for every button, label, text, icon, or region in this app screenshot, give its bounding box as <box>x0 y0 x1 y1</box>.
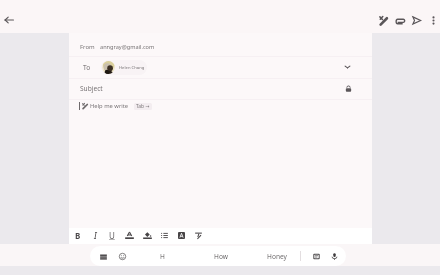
button[interactable]: Text colour <box>121 227 137 243</box>
button[interactable]: More options <box>425 12 440 28</box>
button[interactable]: H <box>142 248 182 264</box>
button[interactable]: Confidential mode <box>340 80 356 96</box>
button[interactable]: Highlight colour <box>139 227 155 243</box>
staticText: Tab → <box>136 103 150 110</box>
button[interactable]: Bold <box>70 227 86 243</box>
staticText: Honey <box>267 252 287 261</box>
button[interactable]: Send <box>408 12 424 28</box>
button[interactable]: Underline <box>104 227 120 243</box>
staticText: Help me write <box>90 102 129 110</box>
staticText: To <box>83 63 91 72</box>
button[interactable]: Attach file <box>392 12 408 28</box>
staticText: anngray@gmail.com <box>100 43 155 51</box>
button[interactable]: Subject <box>69 78 372 99</box>
button[interactable]: Clipboard <box>308 248 324 264</box>
button[interactable]: Emoji <box>114 248 130 264</box>
button[interactable]: Back <box>0 8 18 32</box>
button[interactable]: How <box>201 248 241 264</box>
staticText: From <box>80 43 95 51</box>
button[interactable]: Bulleted list <box>156 227 172 243</box>
button[interactable]: From <box>69 33 372 56</box>
button[interactable]: Paragraph style <box>173 227 189 243</box>
button[interactable]: Voice input <box>326 248 342 264</box>
button[interactable]: Expand recipients <box>339 59 355 75</box>
button[interactable]: Keyboard settings <box>95 248 111 264</box>
button[interactable]: Honey <box>257 248 297 264</box>
staticText: Helen Chang <box>119 65 145 71</box>
button[interactable]: Clear formatting <box>190 227 206 243</box>
staticText: U <box>109 230 115 241</box>
button[interactable]: Italic <box>87 227 103 243</box>
staticText: B <box>75 230 81 241</box>
staticText: Subject <box>80 84 103 93</box>
staticText: H <box>160 252 165 261</box>
button[interactable]: To <box>69 56 372 78</box>
button[interactable]: Help me write <box>375 12 391 28</box>
staticText: How <box>214 252 228 261</box>
staticText: I <box>94 230 97 241</box>
